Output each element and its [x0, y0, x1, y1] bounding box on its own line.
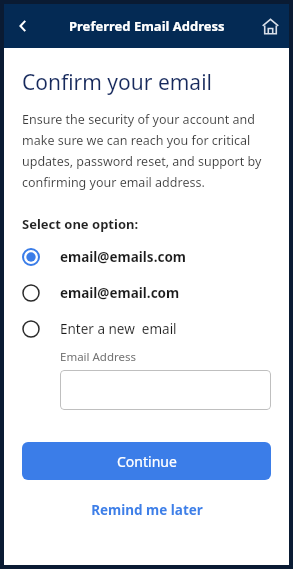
button[interactable]: email@emails.com	[22, 245, 271, 269]
button[interactable]: Home	[251, 7, 289, 45]
staticText: email@emails.com	[60, 248, 186, 266]
button[interactable]: Remind me later	[22, 496, 271, 524]
staticText: email@email.com	[60, 284, 180, 302]
button[interactable]	[60, 370, 271, 410]
button[interactable]: Back	[4, 7, 42, 45]
staticText: Continue	[117, 452, 177, 471]
staticText: Confirm your email	[22, 68, 212, 97]
staticText: Remind me later	[91, 501, 203, 519]
staticText: Ensure the security of your account and …	[22, 111, 271, 191]
staticText: Enter a new email	[60, 320, 177, 338]
button[interactable]: Continue	[22, 442, 271, 480]
button[interactable]: email@email.com	[22, 281, 271, 305]
staticText: Select one option:	[22, 215, 139, 233]
staticText: Preferred Email Address	[69, 17, 225, 35]
button[interactable]: Enter a new email	[22, 317, 271, 341]
staticText: Email Address	[60, 349, 137, 365]
